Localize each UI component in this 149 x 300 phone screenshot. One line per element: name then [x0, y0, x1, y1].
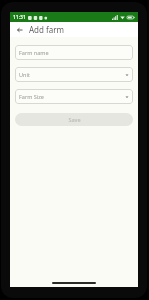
staticText: Add farm: [29, 24, 65, 35]
staticText: Save: [68, 116, 81, 123]
staticText: 11:31: [13, 14, 26, 21]
staticText: Farm Size: [19, 93, 125, 100]
button[interactable]: Save: [15, 113, 133, 126]
button[interactable]: Farm Size: [15, 89, 133, 104]
staticText: Farm name: [19, 49, 129, 56]
button[interactable]: Farm name: [15, 45, 133, 60]
button[interactable]: Unit: [15, 67, 133, 82]
button[interactable]: Back: [14, 24, 25, 35]
staticText: Unit: [19, 71, 125, 78]
